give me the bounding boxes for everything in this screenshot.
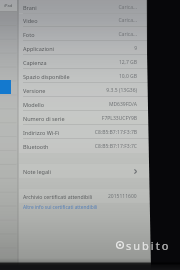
staticText: 12,7 GB [118,59,137,66]
staticText: Carica... [118,17,137,24]
staticText: Spazio disponibile [23,73,70,80]
staticText: 10,0 GB [118,73,137,80]
staticText: Versione [23,87,46,94]
staticText: Modello [23,101,44,108]
button[interactable]: Versione [19,83,153,97]
button[interactable]: Foto [19,27,153,41]
staticText: C8:B5:B7:17:F3:7C [94,143,137,150]
button[interactable]: Capienza [19,55,153,69]
button[interactable]: Numero di serie [19,111,153,125]
button[interactable]: Brani [19,0,153,14]
staticText: Numero di serie [23,115,65,122]
button[interactable]: Note legali [19,164,153,178]
staticText: F7PL33UCFY9B [101,115,137,122]
button[interactable]: Video [19,13,153,27]
staticText: Capienza [23,59,47,66]
staticText: Bluetooth [23,143,49,150]
staticText: 9 [134,45,137,52]
button[interactable]: Archivio certificati attendibili [19,189,153,203]
staticText: subito [126,238,171,253]
staticText: Archivio certificati attendibili [23,193,93,200]
staticText: Foto [23,31,35,38]
staticText: Indirizzo Wi-Fi [23,129,60,136]
button[interactable]: iPad [0,0,17,11]
staticText: 9.3.5 (13G36) [106,87,137,94]
staticText: Carica... [118,31,137,38]
button[interactable]: Spazio disponibile [19,69,153,83]
button[interactable]: Applicazioni [19,41,153,55]
staticText: Video [23,17,38,24]
staticText: Note legali [23,168,51,175]
button[interactable]: Bluetooth [19,139,153,153]
other: subito [116,241,124,249]
other: Apri Note legali [134,169,137,174]
staticText: iPad [4,3,13,8]
button[interactable]: Modello [19,97,153,111]
staticText: 2015111600 [108,193,137,200]
staticText: Carica... [118,4,137,11]
staticText: C8:B5:B7:17:F3:7B [94,129,137,136]
button[interactable]: Indirizzo Wi-Fi [19,125,153,139]
staticText: Brani [23,4,37,11]
button[interactable]: Altre info sui certificati attendibili [23,204,98,211]
staticText: Applicazioni [23,45,54,52]
staticText: MD639FD/A [108,101,137,108]
